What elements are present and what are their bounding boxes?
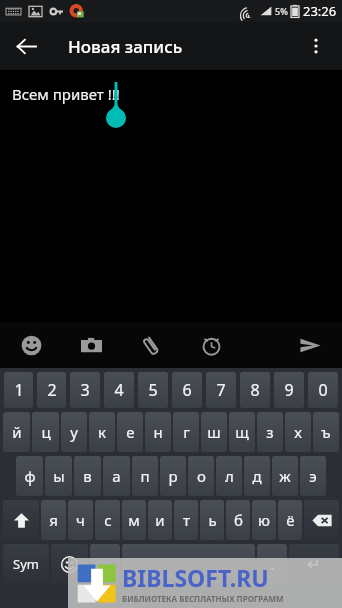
button[interactable]: ь — [200, 500, 224, 540]
button[interactable]: Shift — [3, 500, 39, 540]
staticText: т — [183, 510, 190, 530]
button[interactable]: г — [173, 412, 199, 452]
button[interactable]: Back — [6, 26, 46, 66]
staticText: п — [140, 466, 150, 486]
button[interactable]: з — [257, 412, 283, 452]
button[interactable] — [122, 544, 255, 584]
staticText: э — [309, 466, 317, 486]
staticText: г — [183, 422, 190, 442]
button[interactable]: Emoji — [51, 544, 88, 584]
staticText: 9 — [284, 379, 294, 401]
button[interactable]: 8 — [240, 372, 270, 408]
button[interactable]: м — [122, 500, 146, 540]
button[interactable]: 7 — [206, 372, 236, 408]
staticText: 5% — [275, 5, 288, 17]
button[interactable]: 2 — [37, 372, 66, 408]
button[interactable]: ю — [252, 500, 276, 540]
staticText: ъ — [321, 422, 331, 442]
button[interactable]: э — [300, 456, 326, 496]
button[interactable]: ц — [32, 412, 59, 452]
staticText: ж — [279, 466, 291, 486]
staticText: ц — [41, 422, 51, 442]
button[interactable]: л — [216, 456, 242, 496]
button[interactable]: 9 — [274, 372, 304, 408]
button[interactable]: т — [174, 500, 198, 540]
staticText: . — [270, 554, 275, 574]
staticText: ш — [207, 422, 221, 442]
staticText: ю — [258, 510, 270, 530]
button[interactable]: д — [244, 456, 270, 496]
button[interactable]: Send — [292, 327, 328, 363]
staticText: ч — [76, 510, 85, 530]
button[interactable]: ш — [201, 412, 227, 452]
button[interactable]: ж — [272, 456, 298, 496]
staticText: BIBLSOFT.RU — [122, 562, 269, 593]
button[interactable]: 5 — [138, 372, 168, 408]
button[interactable]: п — [132, 456, 158, 496]
button[interactable]: Emoji — [14, 328, 48, 362]
button[interactable]: Reminder — [194, 328, 228, 362]
button[interactable]: ф — [16, 456, 43, 496]
button[interactable]: 1 — [4, 372, 33, 408]
staticText: в — [83, 466, 92, 486]
staticText: ы — [53, 466, 65, 486]
button[interactable]: й — [3, 412, 30, 452]
staticText: 6 — [182, 379, 192, 401]
staticText: БИБЛИОТЕКА БЕСПЛАТНЫХ ПРОГРАММ — [122, 593, 284, 604]
staticText: 3 — [80, 379, 90, 401]
button[interactable]: 0 — [308, 372, 338, 408]
button[interactable]: р — [160, 456, 186, 496]
staticText: Всем привет !!! — [12, 84, 120, 104]
staticText: щ — [235, 422, 249, 442]
button[interactable]: н — [145, 412, 171, 452]
button[interactable]: ы — [45, 456, 72, 496]
button[interactable]: ъ — [313, 412, 339, 452]
staticText: д — [252, 466, 262, 486]
button[interactable]: Attach — [134, 328, 168, 362]
button[interactable]: Camera — [74, 328, 108, 362]
staticText: я — [49, 510, 58, 530]
staticText: е — [126, 422, 135, 442]
staticText: , — [103, 554, 108, 574]
button[interactable]: 4 — [104, 372, 134, 408]
button[interactable]: х — [285, 412, 311, 452]
button[interactable]: б — [226, 500, 250, 540]
staticText: и — [155, 510, 165, 530]
button[interactable]: 6 — [172, 372, 202, 408]
button[interactable]: а — [103, 456, 130, 496]
staticText: Sym — [13, 555, 39, 573]
staticText: 1 — [14, 379, 24, 401]
button[interactable]: с — [95, 500, 120, 540]
staticText: 4 — [114, 379, 124, 401]
staticText: 7 — [216, 379, 226, 401]
button[interactable]: о — [188, 456, 214, 496]
button[interactable]: и — [148, 500, 172, 540]
staticText: к — [98, 422, 106, 442]
staticText: х — [294, 422, 302, 442]
staticText: 2 — [47, 379, 57, 401]
button[interactable]: , — [90, 544, 120, 584]
staticText: 8 — [250, 379, 260, 401]
button[interactable]: ч — [68, 500, 93, 540]
button[interactable]: More options — [296, 26, 336, 66]
staticText: Новая запись — [68, 35, 183, 58]
button[interactable]: в — [74, 456, 101, 496]
staticText: 0 — [318, 379, 328, 401]
staticText: ↵ — [307, 555, 321, 574]
button[interactable]: Backspace — [304, 500, 339, 540]
staticText: й — [12, 422, 22, 442]
button[interactable]: к — [89, 412, 115, 452]
button[interactable]: 3 — [70, 372, 100, 408]
staticText: ф — [24, 466, 36, 486]
button[interactable]: ё — [278, 500, 302, 540]
button[interactable]: е — [117, 412, 143, 452]
staticText: м — [128, 510, 140, 530]
button[interactable]: ↵ — [289, 544, 339, 584]
button[interactable]: . — [257, 544, 287, 584]
staticText: 23:26 — [303, 2, 337, 20]
button[interactable]: я — [41, 500, 66, 540]
button[interactable]: у — [61, 412, 87, 452]
staticText: ь — [208, 510, 217, 530]
button[interactable]: щ — [229, 412, 255, 452]
button[interactable]: Sym — [3, 544, 49, 584]
